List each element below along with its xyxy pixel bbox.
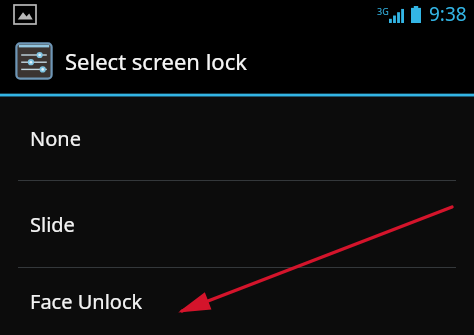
staticText: Face Unlock bbox=[30, 288, 143, 315]
staticText: Select screen lock bbox=[65, 46, 247, 76]
button[interactable]: Slide bbox=[0, 181, 474, 267]
other: Screenshot captured bbox=[14, 5, 36, 24]
button[interactable]: Settings bbox=[0, 28, 474, 93]
button[interactable]: Face Unlock bbox=[0, 268, 474, 335]
staticText: 3G bbox=[377, 5, 389, 17]
staticText: Slide bbox=[30, 211, 75, 238]
other: Settings bbox=[14, 41, 54, 81]
staticText: 9:38 bbox=[429, 1, 467, 27]
staticText: None bbox=[30, 125, 81, 152]
button[interactable]: None bbox=[0, 97, 474, 180]
